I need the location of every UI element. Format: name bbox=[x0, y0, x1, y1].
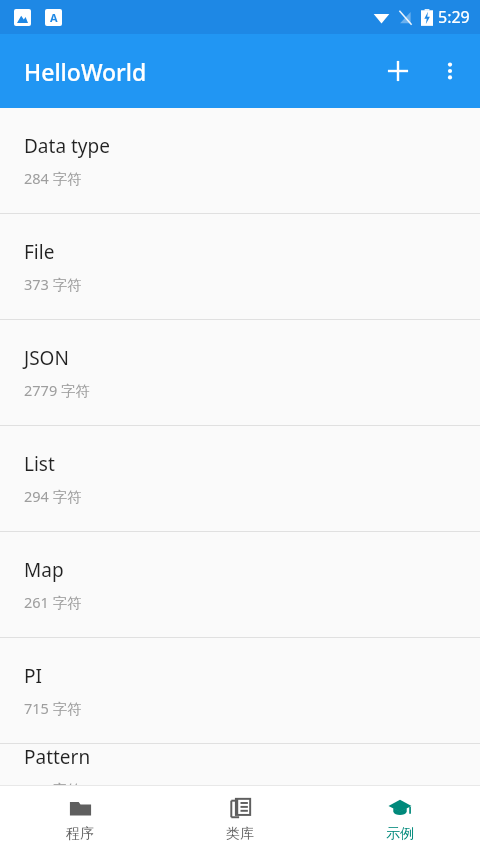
button[interactable]: Pattern bbox=[0, 744, 480, 785]
button[interactable]: 程序 bbox=[0, 786, 160, 853]
button[interactable]: More options bbox=[424, 45, 476, 97]
staticText: 程序 bbox=[66, 825, 94, 843]
button[interactable]: 示例 bbox=[320, 786, 480, 853]
button[interactable]: PI bbox=[0, 638, 480, 743]
staticText: 294 字符 bbox=[24, 486, 82, 506]
staticText: 类库 bbox=[226, 825, 254, 843]
staticText: 5:29 bbox=[438, 6, 470, 28]
button[interactable]: Add bbox=[372, 45, 424, 97]
button[interactable]: Map bbox=[0, 532, 480, 637]
staticText: 2779 字符 bbox=[24, 380, 90, 400]
staticText: A bbox=[50, 10, 58, 25]
staticText: HelloWorld bbox=[24, 56, 147, 87]
staticText: Data type bbox=[24, 133, 110, 159]
staticText: File bbox=[24, 239, 55, 265]
button[interactable]: JSON bbox=[0, 320, 480, 425]
staticText: PI bbox=[24, 663, 42, 689]
staticText: 284 字符 bbox=[24, 168, 82, 188]
button[interactable]: File bbox=[0, 214, 480, 319]
staticText: 示例 bbox=[386, 825, 414, 843]
staticText: 715 字符 bbox=[24, 698, 82, 718]
staticText: JSON bbox=[24, 345, 69, 371]
button[interactable]: Data type bbox=[0, 108, 480, 213]
button[interactable]: 类库 bbox=[160, 786, 320, 853]
staticText: 373 字符 bbox=[24, 274, 82, 294]
staticText: Pattern bbox=[24, 744, 91, 770]
staticText: 261 字符 bbox=[24, 592, 82, 612]
staticText: List bbox=[24, 451, 55, 477]
staticText: Map bbox=[24, 557, 64, 583]
button[interactable]: List bbox=[0, 426, 480, 531]
staticText: 512 字符 bbox=[24, 779, 82, 785]
